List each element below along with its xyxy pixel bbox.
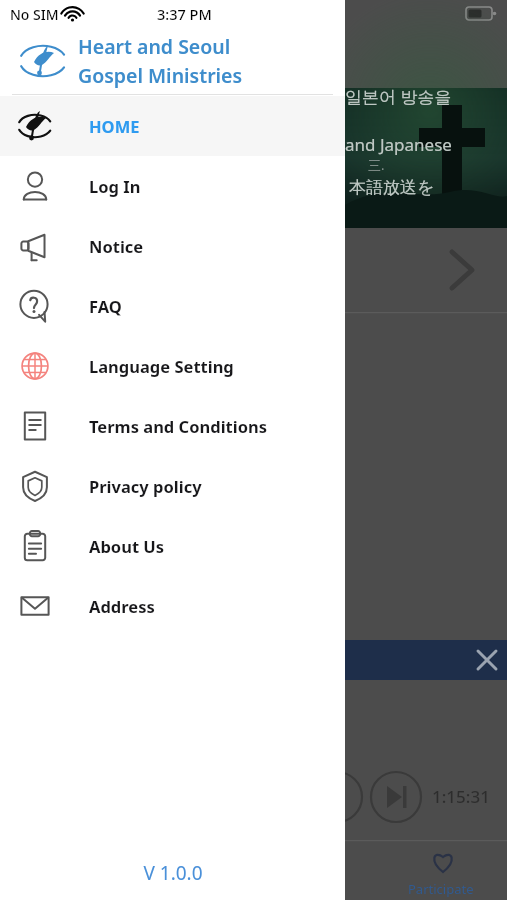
staticText: 本語放送を xyxy=(349,177,435,198)
button[interactable]: Privacy policy xyxy=(0,456,345,516)
button[interactable]: About Us xyxy=(0,516,345,576)
button[interactable]: FAQ xyxy=(0,276,345,336)
button[interactable]: Log In xyxy=(0,156,345,216)
staticText: About Us xyxy=(89,535,165,557)
staticText: Heart and Seoul xyxy=(78,33,231,60)
staticText: and Japanese xyxy=(345,133,452,156)
button[interactable]: Notice xyxy=(0,216,345,276)
button[interactable]: Language Setting xyxy=(0,336,345,396)
button[interactable]: Address xyxy=(0,576,345,636)
staticText: Language Setting xyxy=(89,355,234,377)
staticText: 3:37 PM xyxy=(157,4,212,24)
staticText: 일본어 방송을 xyxy=(345,85,452,108)
staticText: V 1.0.0 xyxy=(143,860,203,886)
button[interactable]: Terms and Conditions xyxy=(0,396,345,456)
staticText: Participate xyxy=(408,880,474,898)
staticText: HOME xyxy=(89,115,140,137)
staticText: Address xyxy=(89,595,155,617)
staticText: Log In xyxy=(89,175,141,197)
staticText: FAQ xyxy=(89,295,122,317)
staticText: Terms and Conditions xyxy=(89,415,267,437)
staticText: Privacy policy xyxy=(89,475,202,497)
staticText: 1:15:31 xyxy=(432,785,490,808)
staticText: No SIM xyxy=(10,5,59,24)
staticText: Gospel Ministries xyxy=(78,62,243,89)
button[interactable]: HOME xyxy=(0,96,345,156)
button[interactable]: Heart and Seoul xyxy=(0,28,345,94)
staticText: Notice xyxy=(89,235,144,257)
staticText: 三. xyxy=(368,156,385,174)
